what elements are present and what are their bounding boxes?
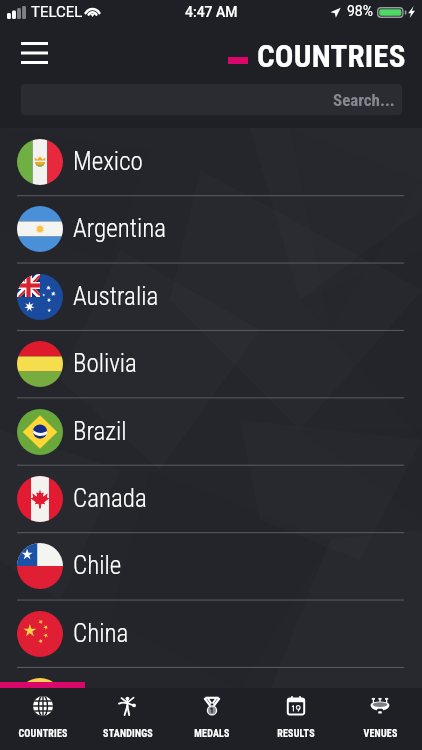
button[interactable]: Australia — [0, 263, 422, 330]
staticText: Bolivia — [73, 349, 137, 378]
staticText: TELCEL — [31, 3, 83, 21]
button[interactable]: Search... — [21, 84, 402, 115]
button[interactable]: Canada — [0, 465, 422, 532]
staticText: Search... — [333, 90, 395, 110]
button[interactable]: Menu — [14, 33, 54, 73]
button[interactable]: STANDINGS — [85, 688, 170, 750]
button[interactable]: Chile — [0, 532, 422, 599]
staticText: 4:47 AM — [185, 4, 238, 20]
staticText: Chile — [73, 551, 122, 580]
staticText: COUNTRIES — [257, 38, 406, 74]
button[interactable]: China — [0, 600, 422, 667]
button[interactable]: Mexico — [0, 128, 422, 195]
staticText: RESULTS — [277, 728, 315, 740]
staticText: VENUES — [363, 728, 398, 740]
button[interactable]: Colombia — [0, 667, 422, 682]
button[interactable]: MEDALS — [170, 688, 254, 750]
staticText: Australia — [73, 282, 159, 311]
button[interactable]: Argentina — [0, 195, 422, 262]
button[interactable]: Brazil — [0, 398, 422, 465]
staticText: COUNTRIES — [18, 728, 68, 740]
staticText: 98% — [347, 3, 373, 19]
button[interactable]: RESULTS — [254, 688, 338, 750]
staticText: Brazil — [73, 417, 127, 446]
staticText: STANDINGS — [103, 728, 153, 740]
button[interactable]: COUNTRIES — [0, 688, 85, 750]
staticText: MEDALS — [194, 728, 230, 740]
button[interactable]: Bolivia — [0, 330, 422, 397]
staticText: Mexico — [73, 147, 143, 176]
button[interactable]: VENUES — [338, 688, 422, 750]
staticText: Argentina — [73, 214, 167, 243]
staticText: Canada — [73, 484, 147, 513]
staticText: China — [73, 619, 129, 648]
